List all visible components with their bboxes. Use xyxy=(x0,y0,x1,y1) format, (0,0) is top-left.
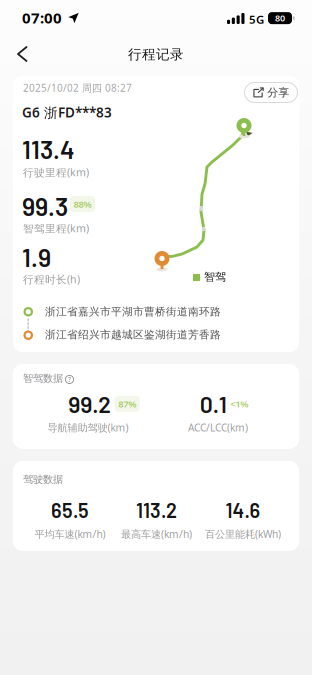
button[interactable]: 分享 xyxy=(244,82,298,103)
staticText: 平均车速(km/h) xyxy=(34,527,105,541)
staticText: 0.1 xyxy=(200,390,227,418)
staticText: ACC/LCC(km) xyxy=(188,420,248,434)
staticText: 行驶里程(km) xyxy=(23,165,89,179)
staticText: 87% xyxy=(118,397,136,410)
staticText: 驾驶数据 xyxy=(23,473,63,486)
staticText: 1.9 xyxy=(22,242,51,272)
staticText: 113.4 xyxy=(22,134,75,164)
staticText: 99.3 xyxy=(22,191,68,221)
button[interactable]: 返回 xyxy=(0,40,38,68)
staticText: 智驾里程(km) xyxy=(23,221,89,235)
staticText: 智驾 xyxy=(204,270,226,284)
staticText: 88% xyxy=(73,197,91,210)
staticText: 百公里能耗(kWh) xyxy=(205,527,281,541)
staticText: 07:00 xyxy=(22,7,62,28)
staticText: <1% xyxy=(230,397,248,410)
staticText: 浙江省嘉兴市平湖市曹桥街道南环路 xyxy=(45,305,221,318)
staticText: 导航辅助驾驶(km) xyxy=(47,420,128,434)
staticText: 行程记录 xyxy=(128,46,184,63)
staticText: 分享 xyxy=(267,86,289,99)
staticText: G6 浙FD***83 xyxy=(22,103,112,121)
staticText: 2025/10/02 周四 08:27 xyxy=(23,81,132,95)
staticText: 智驾数据 xyxy=(23,372,63,385)
staticText: 5G xyxy=(249,11,264,27)
staticText: 14.6 xyxy=(225,498,260,522)
staticText: 65.5 xyxy=(51,498,89,522)
staticText: 113.2 xyxy=(136,498,177,522)
staticText: 浙江省绍兴市越城区鉴湖街道芳香路 xyxy=(45,328,221,341)
staticText: 99.2 xyxy=(68,390,111,418)
staticText: 行程时长(h) xyxy=(23,272,80,286)
button[interactable]: 智驾数据说明 xyxy=(65,375,74,384)
staticText: ? xyxy=(68,375,71,384)
staticText: 最高车速(km/h) xyxy=(121,527,192,541)
staticText: 80 xyxy=(275,12,285,24)
